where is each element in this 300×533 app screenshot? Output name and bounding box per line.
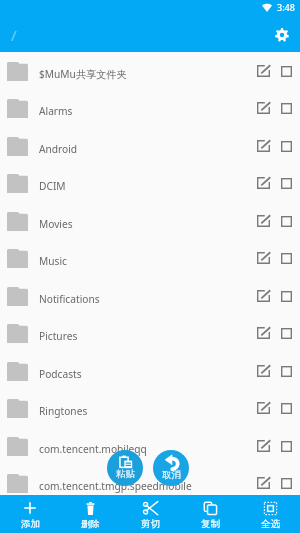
button[interactable]: $MuMu共享文件夹: [0, 52, 300, 90]
staticText: Android: [39, 142, 251, 156]
staticText: /: [11, 25, 17, 45]
staticText: Music: [39, 254, 251, 268]
button[interactable]: Select: [275, 393, 297, 423]
button[interactable]: Music: [0, 239, 300, 277]
staticText: 删除: [81, 518, 100, 530]
button[interactable]: Select: [275, 243, 297, 273]
button[interactable]: DCIM: [0, 164, 300, 202]
staticText: $MuMu共享文件夹: [39, 67, 251, 81]
button[interactable]: Select: [275, 168, 297, 198]
button[interactable]: Select: [275, 56, 297, 86]
staticText: 剪切: [141, 518, 160, 530]
button[interactable]: Podcasts: [0, 352, 300, 390]
button[interactable]: Rename: [251, 281, 275, 311]
button[interactable]: 添加: [0, 495, 60, 533]
button[interactable]: Movies: [0, 202, 300, 240]
staticText: Movies: [39, 217, 251, 231]
staticText: com.tencent.tmgp.speedmobile: [39, 479, 251, 493]
button[interactable]: Alarms: [0, 89, 300, 127]
staticText: 全选: [261, 518, 280, 530]
button[interactable]: 复制: [180, 495, 240, 533]
button[interactable]: Rename: [251, 431, 275, 461]
button[interactable]: Ringtones: [0, 389, 300, 427]
button[interactable]: 删除: [60, 495, 120, 533]
button[interactable]: Settings: [265, 18, 299, 52]
button[interactable]: Rename: [251, 243, 275, 273]
button[interactable]: Notifications: [0, 277, 300, 315]
button[interactable]: Rename: [251, 393, 275, 423]
staticText: Podcasts: [39, 367, 251, 381]
button[interactable]: com.tencent.mobileqq: [0, 427, 300, 465]
staticText: 3:48: [277, 1, 295, 13]
button[interactable]: 取消: [153, 450, 189, 486]
button[interactable]: Rename: [251, 468, 275, 495]
staticText: Notifications: [39, 292, 251, 306]
staticText: DCIM: [39, 179, 251, 193]
staticText: Pictures: [39, 329, 251, 343]
button[interactable]: Rename: [251, 356, 275, 386]
button[interactable]: Rename: [251, 318, 275, 348]
button[interactable]: 全选: [240, 495, 300, 533]
button[interactable]: Select: [275, 356, 297, 386]
button[interactable]: Rename: [251, 131, 275, 161]
staticText: 粘贴: [116, 468, 135, 480]
button[interactable]: Android: [0, 127, 300, 165]
staticText: 复制: [201, 518, 220, 530]
staticText: Ringtones: [39, 404, 251, 418]
button[interactable]: Select: [275, 468, 297, 495]
button[interactable]: Rename: [251, 56, 275, 86]
button[interactable]: 粘贴: [107, 450, 143, 486]
button[interactable]: Select: [275, 318, 297, 348]
button[interactable]: 剪切: [120, 495, 180, 533]
staticText: 添加: [21, 518, 40, 530]
button[interactable]: Select: [275, 431, 297, 461]
button[interactable]: Select: [275, 93, 297, 123]
button[interactable]: Rename: [251, 93, 275, 123]
staticText: 取消: [162, 469, 181, 481]
staticText: Alarms: [39, 104, 251, 118]
button[interactable]: Select: [275, 206, 297, 236]
button[interactable]: Rename: [251, 168, 275, 198]
staticText: com.tencent.mobileqq: [39, 442, 251, 456]
button[interactable]: com.tencent.tmgp.speedmobile: [0, 464, 300, 495]
button[interactable]: Pictures: [0, 314, 300, 352]
button[interactable]: Select: [275, 131, 297, 161]
button[interactable]: Rename: [251, 206, 275, 236]
button[interactable]: Select: [275, 281, 297, 311]
